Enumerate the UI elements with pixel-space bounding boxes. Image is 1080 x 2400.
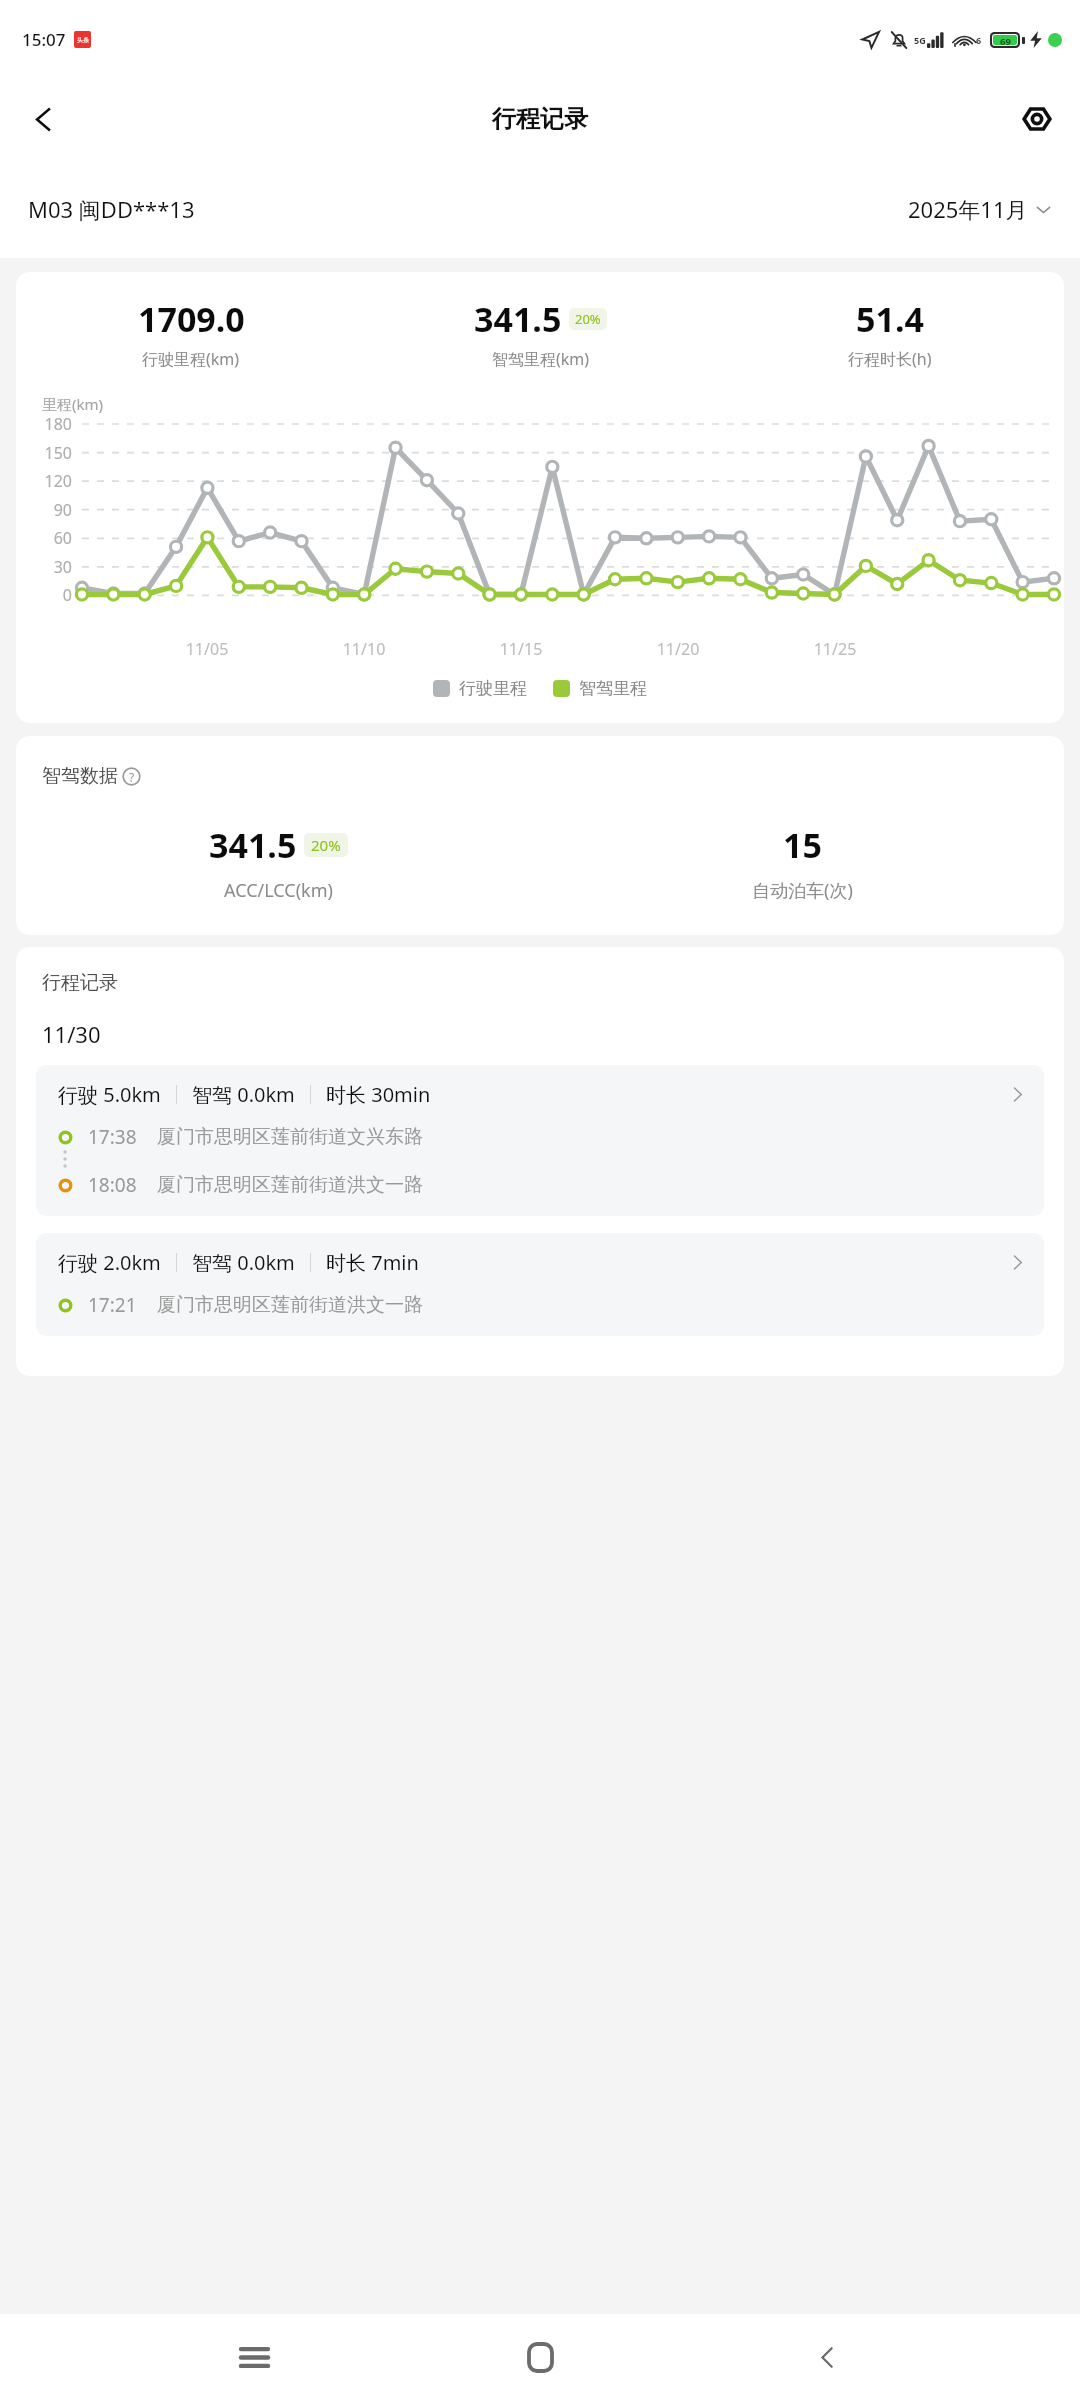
staticText: 6 — [976, 34, 982, 46]
staticText: 17:38 — [88, 1124, 137, 1150]
staticText: 智驾数据 — [42, 764, 118, 788]
staticText: 行程记录 — [42, 971, 118, 995]
staticText: 60 — [16, 527, 72, 549]
staticText: 15 — [783, 822, 822, 868]
staticText: 厦门市思明区莲前街道文兴东路 — [157, 1125, 423, 1149]
staticText: M03 闽DD***13 — [28, 194, 195, 224]
staticText: 行程时长(h) — [848, 348, 932, 370]
staticText: 里程(km) — [42, 394, 104, 414]
staticText: 1709.0 — [138, 296, 245, 342]
staticText: 20% — [575, 310, 601, 328]
staticText: 2025年11月 — [908, 194, 1028, 224]
staticText: 11/15 — [491, 638, 551, 660]
staticText: ACC/LCC(km) — [224, 878, 333, 903]
button[interactable]: Settings — [1010, 92, 1064, 146]
staticText: 厦门市思明区莲前街道洪文一路 — [157, 1293, 423, 1317]
staticText: 17:21 — [88, 1292, 137, 1318]
staticText: 18:08 — [88, 1172, 137, 1198]
staticText: 行驶里程 — [459, 678, 527, 699]
staticText: 智驾 0.0km — [192, 1249, 295, 1276]
staticText: 20% — [311, 835, 341, 855]
button[interactable]: Help — [122, 767, 141, 786]
staticText: ? — [129, 769, 135, 785]
staticText: 智驾 0.0km — [192, 1081, 295, 1108]
staticText: 11/10 — [334, 638, 394, 660]
staticText: 行驶里程(km) — [142, 348, 240, 370]
button[interactable]: 行驶 2.0km — [36, 1233, 1044, 1336]
staticText: 时长 7min — [326, 1249, 419, 1276]
staticText: 150 — [16, 442, 72, 464]
staticText: 30 — [16, 556, 72, 578]
button[interactable]: 2025年11月 — [908, 194, 1052, 224]
staticText: 0 — [16, 584, 72, 606]
staticText: 厦门市思明区莲前街道洪文一路 — [157, 1173, 423, 1197]
staticText: 行程记录 — [492, 104, 588, 134]
button[interactable]: Recents — [221, 2324, 287, 2390]
staticText: 行驶 5.0km — [58, 1081, 161, 1108]
staticText: 行驶 2.0km — [58, 1249, 161, 1276]
button[interactable]: Home — [507, 2324, 573, 2390]
button[interactable]: Back — [794, 2324, 860, 2390]
staticText: 341.5 — [474, 296, 562, 342]
staticText: 69 — [1000, 35, 1011, 45]
staticText: 120 — [16, 470, 72, 492]
staticText: 智驾里程(km) — [492, 348, 590, 370]
staticText: 11/25 — [805, 638, 865, 660]
staticText: 11/20 — [648, 638, 708, 660]
staticText: 5G — [914, 34, 926, 46]
staticText: 51.4 — [856, 296, 924, 342]
staticText: 头条 — [77, 36, 89, 44]
button[interactable]: 行驶 5.0km — [36, 1065, 1044, 1216]
staticText: 智驾里程 — [579, 678, 647, 699]
staticText: 15:07 — [22, 28, 66, 51]
staticText: 自动泊车(次) — [752, 878, 853, 903]
staticText: 341.5 — [209, 822, 297, 868]
button[interactable]: Back — [14, 90, 72, 148]
staticText: 11/30 — [42, 1019, 101, 1049]
staticText: 90 — [16, 499, 72, 521]
staticText: 时长 30min — [326, 1081, 431, 1108]
staticText: 180 — [16, 413, 72, 435]
staticText: 11/05 — [177, 638, 237, 660]
